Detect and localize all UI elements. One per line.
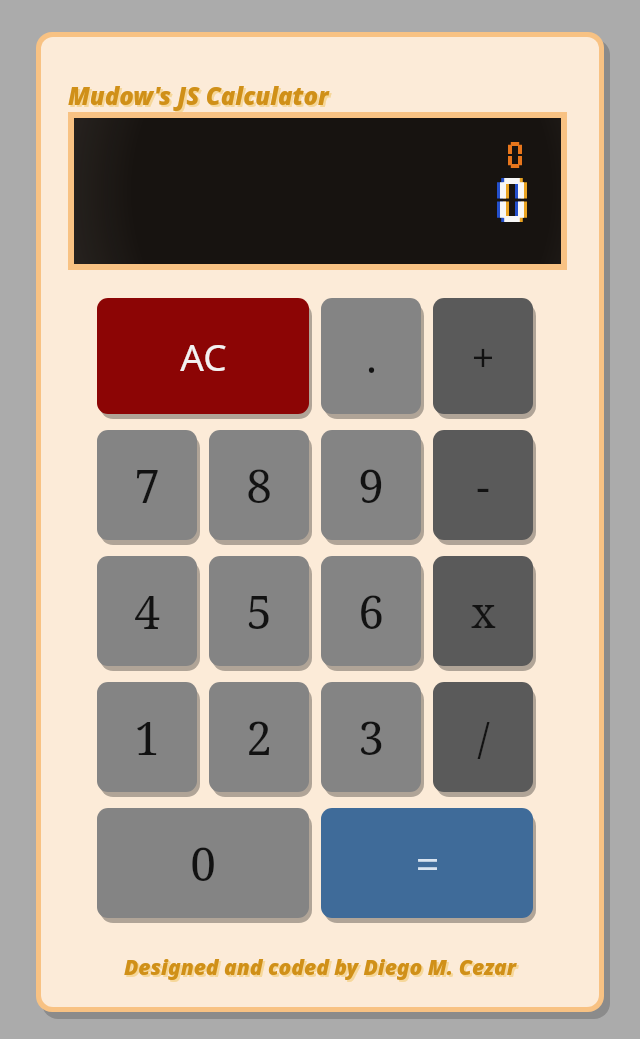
staticText: x (471, 583, 496, 640)
staticText: AC (180, 331, 227, 381)
staticText: Designed and coded by Diego M. Cezar (126, 955, 519, 984)
staticText: 7 (134, 454, 160, 517)
button[interactable]: 8 (209, 430, 309, 540)
button[interactable]: 5 (209, 556, 309, 666)
staticText: 1 (134, 706, 160, 769)
button[interactable]: 3 (321, 682, 421, 792)
staticText: 4 (134, 580, 160, 643)
staticText: 6 (358, 580, 384, 643)
staticText: Mudow's JS Calculator (70, 81, 331, 114)
button[interactable]: 9 (321, 430, 421, 540)
button[interactable]: AC (97, 298, 309, 414)
staticText: . (366, 328, 377, 385)
staticText: 3 (358, 706, 384, 769)
staticText: - (476, 457, 490, 514)
button[interactable]: 7 (97, 430, 197, 540)
button[interactable]: 0 (97, 808, 309, 918)
staticText: / (477, 709, 490, 766)
button[interactable]: / (433, 682, 533, 792)
staticText: 2 (246, 706, 272, 769)
staticText: 0 (190, 832, 216, 895)
staticText: 8 (246, 454, 272, 517)
button[interactable]: 1 (97, 682, 197, 792)
staticText: = (415, 833, 440, 893)
button[interactable]: - (433, 430, 533, 540)
staticText: 9 (358, 454, 384, 517)
button[interactable]: x (433, 556, 533, 666)
button[interactable]: + (433, 298, 533, 414)
button[interactable]: = (321, 808, 533, 918)
button[interactable]: 2 (209, 682, 309, 792)
button[interactable]: . (321, 298, 421, 414)
staticText: 5 (246, 580, 272, 643)
button[interactable]: 6 (321, 556, 421, 666)
staticText: + (471, 328, 495, 385)
button[interactable]: 4 (97, 556, 197, 666)
staticText: Mudow's JS Calculator (68, 79, 329, 112)
staticText: Designed and coded by Diego M. Cezar (124, 953, 517, 982)
